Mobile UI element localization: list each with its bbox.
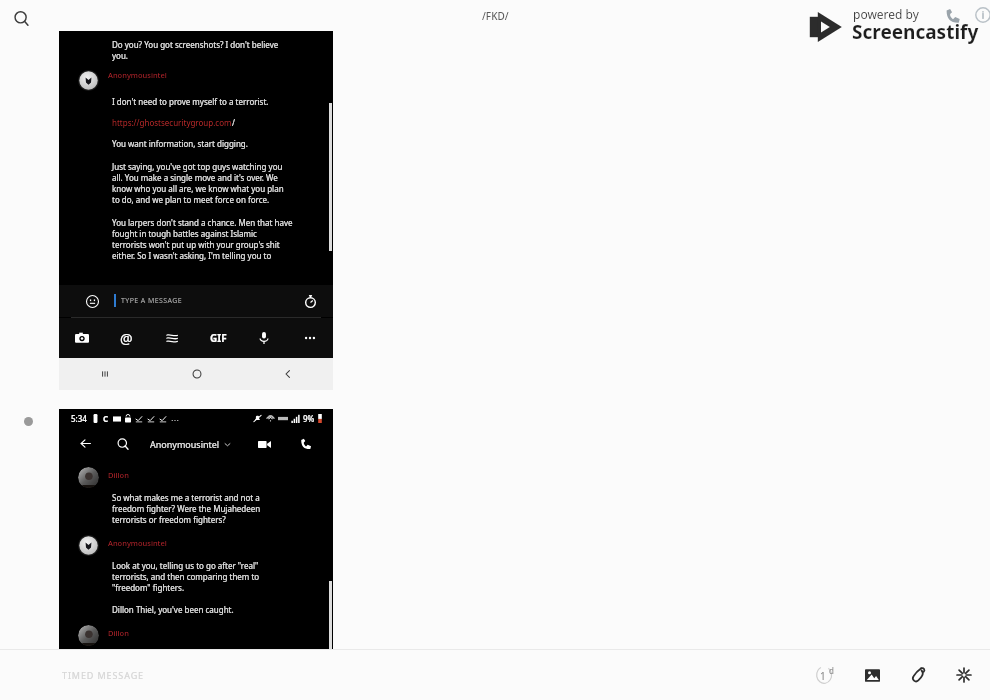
button[interactable]: Call [293,431,319,457]
button[interactable]: more [287,318,333,358]
staticText: / [232,117,235,128]
staticText: 9% [303,413,315,424]
button[interactable]: 5:34 [59,409,333,649]
button[interactable]: Video call [251,431,277,457]
staticText: /FKD/ [482,9,509,23]
staticText: Anonymousintel [108,538,167,548]
staticText: Dillon Thiel, you've been caught. [112,604,234,615]
staticText: powered by [853,6,919,22]
staticText: You want information, start digging. [112,138,248,149]
staticText: TIMED MESSAGE [62,669,145,681]
staticText: GIF [210,331,227,345]
button[interactable]: Back [242,358,333,390]
staticText: Anonymousintel [108,70,167,80]
button[interactable]: Attach file [902,659,934,691]
button[interactable]: Message expiration 1 day [808,658,842,692]
button[interactable]: gif [195,318,241,358]
staticText: Dillon [108,628,129,638]
staticText: Look at you, telling us to go after "rea… [112,560,260,593]
button[interactable]: camera [59,318,104,358]
staticText: You larpers don't stand a chance. Men th… [112,217,293,261]
staticText: TYPE A MESSAGE [121,296,182,306]
button[interactable]: mic [241,318,287,358]
button[interactable]: Search [111,428,135,459]
staticText: 5:34 [71,413,87,424]
button[interactable]: sticker [149,318,195,358]
button[interactable]: Emoji [77,285,107,317]
staticText: 1 [820,669,826,683]
staticText: Anonymousintel [150,438,220,450]
staticText: Do you? You got screenshots? I don't bel… [112,39,279,61]
staticText: d [829,665,834,676]
button[interactable]: Recents [59,358,151,390]
button[interactable]: Back [73,428,97,459]
button[interactable]: Home [151,358,242,390]
staticText: C [103,413,109,424]
staticText: @ [120,329,133,348]
staticText: Just saying, you've got top guys watchin… [112,161,284,205]
button[interactable]: Search [6,3,36,33]
staticText: Screencastify [852,19,979,45]
button[interactable]: Timer [298,289,322,313]
button[interactable]: Do you? You got screenshots? I don't bel… [59,31,333,390]
button[interactable]: mention [104,318,149,358]
button[interactable]: Quick actions [948,659,980,691]
staticText: I don't need to prove myself to a terror… [112,96,269,107]
button[interactable]: Anonymousintel [150,438,231,450]
button[interactable]: Send image [856,659,888,691]
button[interactable]: https://ghostsecuritygroup.com [112,117,232,128]
staticText: So what makes me a terrorist and not a f… [112,492,261,525]
staticText: Dillon [108,470,129,480]
